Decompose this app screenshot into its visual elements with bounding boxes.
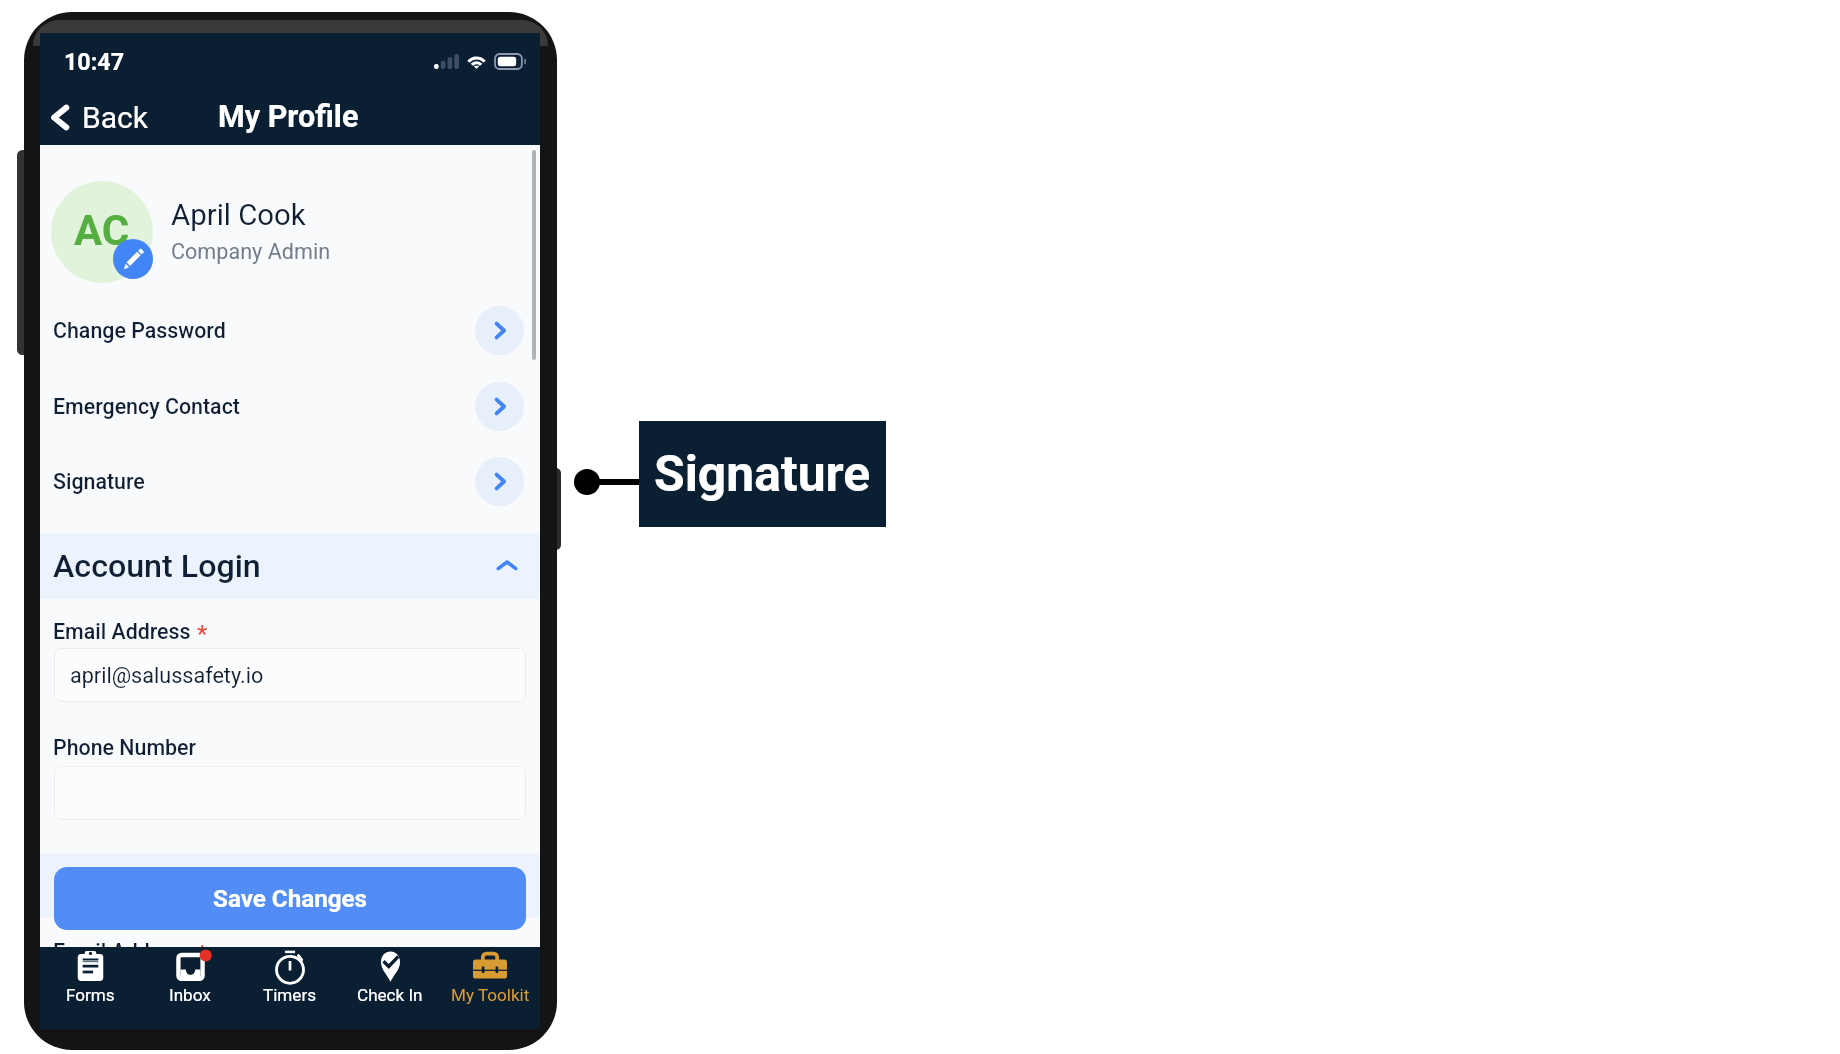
staticText: *: [197, 620, 208, 648]
staticText: My Toolkit: [451, 985, 530, 1005]
staticText: 10:47: [64, 48, 125, 75]
button[interactable]: My Toolkit: [440, 947, 540, 1029]
button[interactable]: Emergency Contact: [40, 368, 540, 444]
button[interactable]: Back: [40, 94, 157, 141]
button[interactable]: Account Login: [40, 533, 540, 599]
staticText: *: [197, 940, 208, 968]
staticText: Timers: [263, 985, 317, 1005]
staticText: Save Changes: [213, 885, 368, 913]
staticText: Email Address: [53, 939, 191, 964]
button[interactable]: Forms: [40, 947, 140, 1029]
staticText: Check In: [357, 985, 423, 1005]
staticText: AC: [74, 206, 130, 255]
staticText: Emergency Contact: [53, 394, 240, 419]
staticText: april@salussafety.io: [70, 663, 264, 688]
button[interactable]: Inbox: [140, 947, 240, 1029]
staticText: April Cook: [171, 198, 306, 232]
staticText: Forms: [66, 985, 115, 1005]
button[interactable]: [54, 766, 526, 820]
button[interactable]: Timers: [240, 947, 340, 1029]
button[interactable]: Change Password: [40, 292, 540, 368]
button[interactable]: Signature: [40, 443, 540, 519]
staticText: Signature: [654, 445, 871, 503]
button[interactable]: april@salussafety.io: [54, 648, 526, 702]
staticText: Change Password: [53, 318, 226, 343]
button[interactable]: Save Changes: [54, 867, 526, 930]
button[interactable]: Edit profile photo: [113, 239, 153, 279]
button[interactable]: Check In: [340, 947, 440, 1029]
staticText: My Profile: [218, 99, 359, 135]
staticText: Signature: [53, 469, 145, 494]
staticText: Account Login: [53, 547, 261, 585]
staticText: Inbox: [169, 985, 211, 1005]
staticText: Phone Number: [53, 735, 197, 760]
staticText: Back: [82, 100, 148, 135]
staticText: Company Admin: [171, 239, 331, 264]
staticText: Email Address: [53, 619, 191, 644]
